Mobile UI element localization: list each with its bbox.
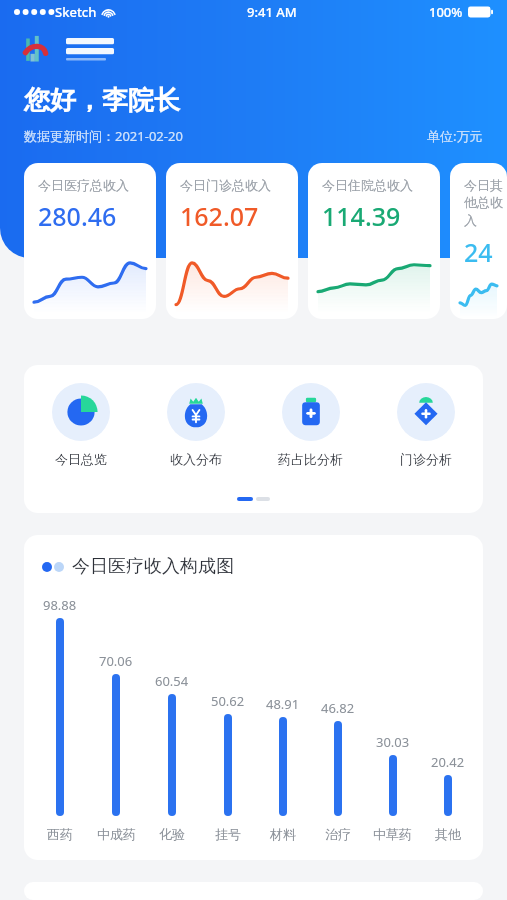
button[interactable]: 药占比分析: [253, 383, 368, 467]
button[interactable]: 今日总览: [24, 383, 138, 467]
staticText: 24: [464, 235, 493, 269]
button[interactable]: 门诊分析: [368, 383, 483, 467]
staticText: 48.91: [266, 695, 300, 713]
staticText: 门诊分析: [400, 451, 452, 467]
staticText: 50.62: [211, 692, 245, 710]
button[interactable]: 今日住院总收入: [308, 163, 440, 319]
staticText: 中草药: [373, 826, 412, 842]
staticText: 化验: [159, 826, 185, 842]
staticText: 100%: [429, 3, 463, 21]
staticText: 您好，李院长: [24, 84, 180, 117]
staticText: 162.07: [180, 199, 259, 233]
staticText: 30.03: [376, 733, 410, 751]
staticText: 治疗: [325, 826, 351, 842]
staticText: 98.88: [43, 596, 77, 614]
staticText: 今日门诊总收入: [180, 177, 271, 193]
staticText: 今日其他总收入: [464, 177, 507, 229]
staticText: 收入分布: [170, 451, 222, 467]
staticText: 其他: [435, 826, 461, 842]
button[interactable]: 收入分布: [138, 383, 253, 467]
staticText: 70.06: [99, 652, 133, 670]
staticText: 今日医疗总收入: [38, 177, 129, 193]
button[interactable]: [24, 30, 114, 70]
staticText: 中成药: [97, 826, 136, 842]
staticText: 西药: [47, 826, 73, 842]
staticText: 60.54: [155, 672, 189, 690]
staticText: 20.42: [431, 753, 465, 771]
staticText: 单位:万元: [427, 127, 483, 145]
staticText: 今日总览: [55, 451, 107, 467]
staticText: 数据更新时间：2021-02-20: [24, 127, 183, 145]
button[interactable]: 今日其他总收入: [450, 163, 507, 319]
staticText: 材料: [270, 826, 296, 842]
staticText: 今日住院总收入: [322, 177, 413, 193]
staticText: 挂号: [215, 826, 241, 842]
button[interactable]: 今日医疗总收入: [24, 163, 156, 319]
staticText: 280.46: [38, 199, 117, 233]
button[interactable]: 今日门诊总收入: [166, 163, 298, 319]
staticText: 114.39: [322, 199, 401, 233]
staticText: 46.82: [321, 699, 355, 717]
staticText: 今日医疗收入构成图: [72, 555, 234, 578]
staticText: Sketch: [55, 3, 97, 21]
staticText: 药占比分析: [278, 451, 343, 467]
staticText: 9:41 AM: [247, 3, 297, 21]
